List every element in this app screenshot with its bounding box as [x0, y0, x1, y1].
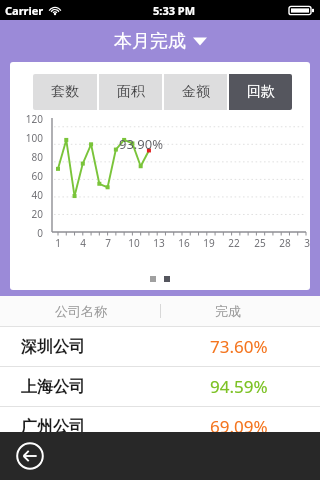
- button[interactable]: Back: [13, 439, 47, 473]
- staticText: 40: [17, 188, 43, 202]
- staticText: 31: [301, 236, 310, 250]
- staticText: 1: [49, 236, 67, 250]
- staticText: 上海公司: [21, 377, 85, 397]
- button[interactable]: 深圳公司: [0, 327, 320, 366]
- staticText: 完成: [215, 303, 241, 319]
- staticText: 100: [17, 131, 43, 145]
- staticText: 80: [17, 150, 43, 164]
- button[interactable]: 回款: [229, 74, 292, 110]
- staticText: 93.90%: [119, 135, 164, 153]
- staticText: 公司名称: [55, 303, 107, 319]
- staticText: 25: [251, 236, 269, 250]
- button[interactable]: 广州公司: [0, 407, 320, 446]
- staticText: 28: [276, 236, 294, 250]
- staticText: 5:33 PM: [153, 3, 196, 18]
- staticText: 16: [175, 236, 193, 250]
- staticText: 13: [150, 236, 168, 250]
- staticText: 金额: [182, 83, 210, 101]
- staticText: 19: [200, 236, 218, 250]
- staticText: 0: [17, 226, 43, 240]
- staticText: 广州公司: [21, 417, 85, 437]
- staticText: 22: [225, 236, 243, 250]
- staticText: 94.59%: [210, 375, 268, 398]
- staticText: 73.60%: [210, 335, 268, 358]
- button[interactable]: 本月完成: [0, 20, 320, 62]
- staticText: 回款: [247, 83, 275, 101]
- staticText: 深圳公司: [21, 337, 85, 357]
- staticText: 面积: [117, 83, 145, 101]
- button[interactable]: 金额: [164, 74, 227, 110]
- staticText: 69.09%: [210, 415, 268, 438]
- button[interactable]: 面积: [99, 74, 162, 110]
- staticText: 4: [74, 236, 92, 250]
- staticText: Carrier: [5, 3, 44, 18]
- staticText: 20: [17, 207, 43, 221]
- button[interactable]: 套数: [33, 74, 97, 110]
- staticText: 7: [99, 236, 117, 250]
- staticText: 10: [125, 236, 143, 250]
- staticText: 套数: [51, 83, 79, 101]
- staticText: 120: [17, 112, 43, 126]
- button[interactable]: 上海公司: [0, 367, 320, 406]
- staticText: 本月完成: [114, 30, 186, 53]
- staticText: 60: [17, 169, 43, 183]
